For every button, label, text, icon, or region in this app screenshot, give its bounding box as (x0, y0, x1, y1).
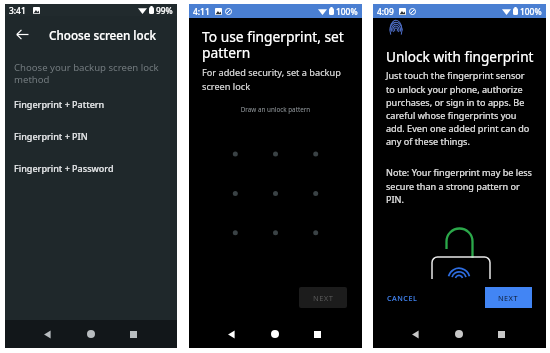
button[interactable]: Recent apps (296, 320, 339, 348)
button[interactable]: CANCEL (384, 289, 421, 307)
button[interactable]: Back (26, 320, 69, 348)
staticText: Choose screen lock (49, 27, 156, 43)
staticText: NEXT (313, 293, 334, 303)
button[interactable]: NEXT (299, 287, 347, 308)
button[interactable]: Recent apps (112, 320, 155, 348)
button[interactable]: Fingerprint + PIN (5, 120, 177, 152)
staticText: Fingerprint + Pattern (14, 98, 105, 110)
button[interactable]: Home (437, 320, 480, 348)
button[interactable]: Fingerprint + Password (5, 152, 177, 184)
button[interactable]: Recent apps (480, 320, 523, 348)
button[interactable]: Home (253, 320, 296, 348)
staticText: Just touch the fingerprint sensor to unl… (386, 69, 534, 147)
staticText: 100% (336, 6, 358, 17)
staticText: 99% (156, 5, 173, 16)
button[interactable]: Back (210, 320, 253, 348)
staticText: CANCEL (387, 293, 418, 303)
staticText: Note: Your fingerprint may be less secur… (386, 166, 534, 205)
staticText: Fingerprint + Password (14, 162, 114, 174)
staticText: 4:11 (193, 6, 210, 17)
staticText: For added security, set a backup screen … (202, 66, 349, 92)
staticText: Draw an unlock pattern (189, 105, 362, 114)
staticText: NEXT (498, 293, 519, 303)
staticText: 100% (520, 6, 542, 17)
staticText: Unlock with fingerprint (386, 47, 534, 66)
button[interactable]: Fingerprint + Pattern (5, 88, 177, 120)
button[interactable]: Back (394, 320, 437, 348)
button[interactable]: Home (69, 320, 112, 348)
button[interactable]: NEXT (485, 287, 532, 308)
staticText: 4:09 (377, 6, 394, 17)
button[interactable]: Navigate up (11, 23, 33, 45)
staticText: Choose your backup screen lock method (14, 61, 166, 86)
staticText: To use fingerprint, set pattern (202, 27, 350, 62)
staticText: Fingerprint + PIN (14, 130, 88, 142)
staticText: 3:41 (9, 5, 26, 16)
